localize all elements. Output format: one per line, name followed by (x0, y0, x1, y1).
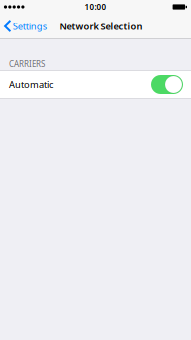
staticText: 10:00 (84, 2, 106, 12)
staticText: Automatic (9, 78, 53, 91)
button[interactable]: Automatic carrier selection, on (151, 75, 183, 94)
staticText: CARRIERS (9, 58, 45, 69)
staticText: Network Selection (59, 20, 142, 32)
staticText: Settings (13, 20, 47, 32)
button[interactable]: Settings (0, 14, 52, 38)
button[interactable]: Automatic (0, 71, 191, 98)
